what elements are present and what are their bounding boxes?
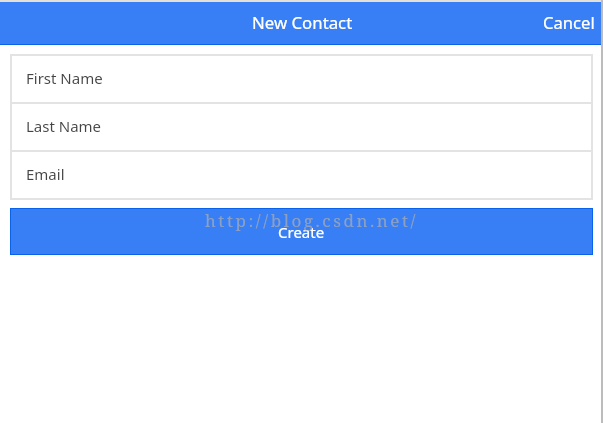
- button[interactable]: Create: [10, 208, 593, 255]
- staticText: http://blog.csdn.net/: [205, 209, 418, 232]
- staticText: Create: [278, 222, 325, 242]
- button[interactable]: Last Name: [12, 104, 591, 150]
- staticText: Cancel: [543, 11, 595, 32]
- staticText: First Name: [26, 68, 103, 88]
- staticText: Last Name: [26, 116, 102, 136]
- staticText: New Contact: [252, 11, 353, 34]
- button[interactable]: Email: [12, 152, 591, 198]
- staticText: Email: [26, 164, 65, 184]
- button[interactable]: Cancel: [533, 2, 603, 45]
- button[interactable]: First Name: [12, 56, 591, 102]
